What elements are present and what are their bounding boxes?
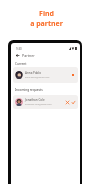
button[interactable]: Anna Pablo <box>13 67 78 83</box>
staticText: anna.pablo@gmail.com <box>25 76 50 79</box>
staticText: Find a partner <box>30 9 63 28</box>
staticText: Anna Pablo <box>25 71 42 75</box>
staticText: Jonathan Cole <box>25 98 45 102</box>
button[interactable]: Jonathan Cole <box>13 95 78 109</box>
staticText: jonathan.cole@gmail.com <box>25 103 52 106</box>
staticText: Current <box>15 62 27 66</box>
button[interactable]: Decline <box>65 100 70 105</box>
staticText: Incoming requests <box>15 88 43 92</box>
staticText: Partner <box>22 53 35 58</box>
button[interactable]: More options <box>70 72 76 78</box>
button[interactable]: Accept <box>71 100 76 105</box>
button[interactable]: Back <box>14 52 21 59</box>
staticText: 9:30 <box>16 47 22 51</box>
